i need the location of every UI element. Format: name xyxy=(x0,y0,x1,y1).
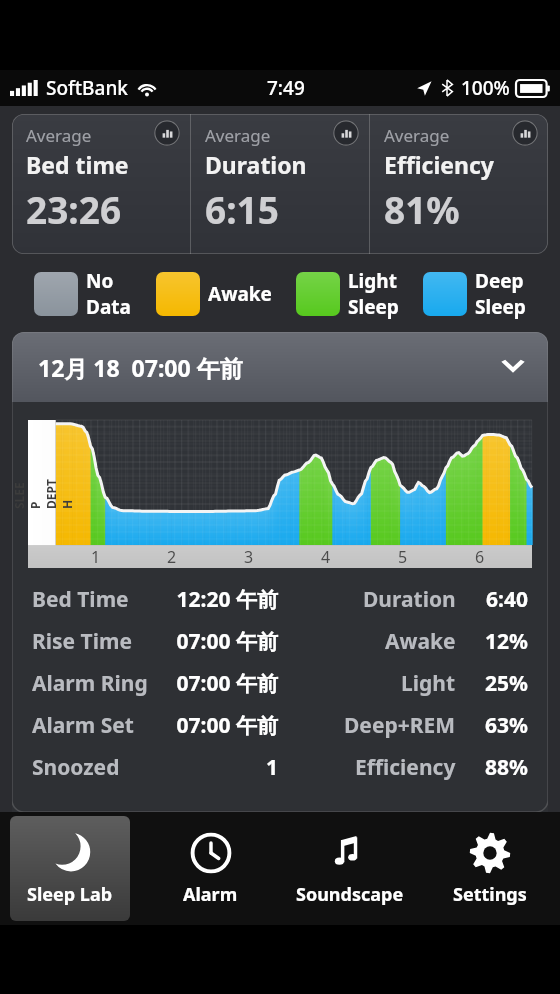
staticText: SoftBank xyxy=(46,75,128,101)
staticText: Alarm Ring xyxy=(32,669,150,698)
staticText: Light xyxy=(401,669,456,698)
staticText: 100% xyxy=(461,75,510,101)
button[interactable]: Average xyxy=(370,114,548,254)
staticText: 25% xyxy=(468,669,528,698)
button[interactable]: Soundscape xyxy=(280,812,420,925)
button[interactable]: Rise Time xyxy=(32,620,528,662)
staticText: No xyxy=(86,268,114,294)
staticText: Rise Time xyxy=(32,627,150,656)
staticText: Alarm xyxy=(183,882,238,907)
button[interactable]: Alarm Set xyxy=(32,704,528,746)
staticText: 5 xyxy=(398,546,408,568)
staticText: Sleep xyxy=(348,294,399,320)
button[interactable]: Average xyxy=(12,114,190,254)
staticText: 1 xyxy=(91,546,101,568)
button[interactable]: Alarm Ring xyxy=(32,662,528,704)
staticText: 07:00 午前 xyxy=(150,711,278,740)
button[interactable]: Average xyxy=(191,114,369,254)
staticText: Sleep Lab xyxy=(27,882,113,907)
staticText: 88% xyxy=(468,753,528,782)
staticText: 6:15 xyxy=(205,184,279,234)
staticText: Bed Time xyxy=(32,585,150,614)
staticText: Average xyxy=(384,124,450,147)
staticText: Deep xyxy=(475,268,524,294)
staticText: Deep+REM xyxy=(344,711,456,740)
staticText: 12:20 午前 xyxy=(150,585,278,614)
staticText: Average xyxy=(205,124,271,147)
staticText: Awake xyxy=(208,281,272,307)
staticText: SLEEP DEPTH xyxy=(12,479,75,509)
staticText: 12月 18 07:00 午前 xyxy=(38,352,243,383)
staticText: Awake xyxy=(385,627,456,656)
button[interactable]: Show chart xyxy=(333,120,359,146)
button[interactable]: Snoozed xyxy=(32,746,528,788)
staticText: 23:26 xyxy=(26,184,122,234)
staticText: Snoozed xyxy=(32,753,150,782)
staticText: 4 xyxy=(321,546,331,568)
staticText: Duration xyxy=(205,149,307,180)
staticText: 6 xyxy=(475,546,485,568)
staticText: Bed time xyxy=(26,149,129,180)
staticText: 12% xyxy=(468,627,528,656)
staticText: Efficiency xyxy=(355,753,456,782)
staticText: Alarm Set xyxy=(32,711,150,740)
staticText: Average xyxy=(26,124,92,147)
staticText: Data xyxy=(86,294,131,320)
button[interactable]: Settings xyxy=(420,812,560,925)
staticText: 2 xyxy=(167,546,177,568)
staticText: Efficiency xyxy=(384,149,494,180)
staticText: Duration xyxy=(363,585,456,614)
staticText: 3 xyxy=(244,546,254,568)
button[interactable]: Show chart xyxy=(154,120,180,146)
button[interactable]: Show chart xyxy=(512,120,538,146)
staticText: 07:00 午前 xyxy=(150,669,278,698)
button[interactable]: 12月 18 07:00 午前 xyxy=(12,332,548,402)
button[interactable]: Bed Time xyxy=(32,578,528,620)
button[interactable]: Alarm xyxy=(140,812,280,925)
staticText: 1 xyxy=(150,753,278,782)
staticText: Soundscape xyxy=(296,882,404,907)
staticText: Sleep xyxy=(475,294,526,320)
button[interactable]: Sleep Lab xyxy=(10,816,130,921)
staticText: 81% xyxy=(384,184,460,234)
staticText: 63% xyxy=(468,711,528,740)
staticText: 7:49 xyxy=(267,75,305,101)
staticText: Light xyxy=(348,268,397,294)
staticText: 07:00 午前 xyxy=(150,627,278,656)
staticText: Settings xyxy=(453,882,527,907)
staticText: 6:40 xyxy=(468,585,528,614)
